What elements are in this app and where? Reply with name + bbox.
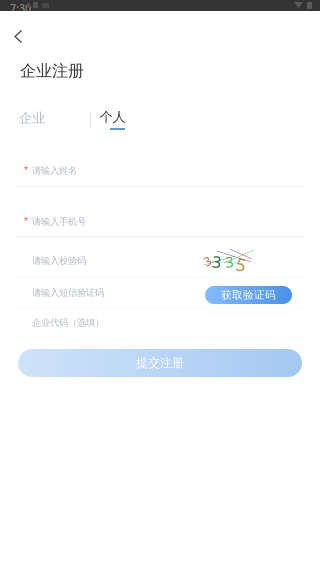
staticText: * (23, 214, 28, 226)
staticText: 3 (212, 251, 221, 272)
staticText: 企业注册 (20, 61, 84, 81)
staticText: 请输入短信验证码 (32, 287, 104, 298)
staticText: 3 (225, 252, 233, 271)
staticText: 个人 (99, 109, 125, 125)
button[interactable]: 获取验证码 (205, 286, 292, 304)
button[interactable]: 个人 (89, 110, 136, 134)
staticText: 5 (236, 253, 246, 276)
staticText: 7:30 (10, 1, 31, 15)
staticText: 企业 (19, 110, 45, 126)
staticText: 获取验证码 (221, 288, 276, 301)
button[interactable]: 提交注册 (18, 349, 302, 377)
button[interactable]: 企业 (6, 105, 58, 131)
staticText: 请输入手机号 (32, 216, 86, 227)
staticText: 企业代码（选填） (32, 317, 104, 328)
staticText: 请输入校验码 (32, 255, 86, 266)
button[interactable]: Back (0, 11, 44, 47)
staticText: 提交注册 (136, 356, 184, 370)
staticText: * (23, 163, 28, 175)
staticText: 请输入姓名 (32, 165, 77, 176)
staticText: 3 (204, 253, 211, 269)
